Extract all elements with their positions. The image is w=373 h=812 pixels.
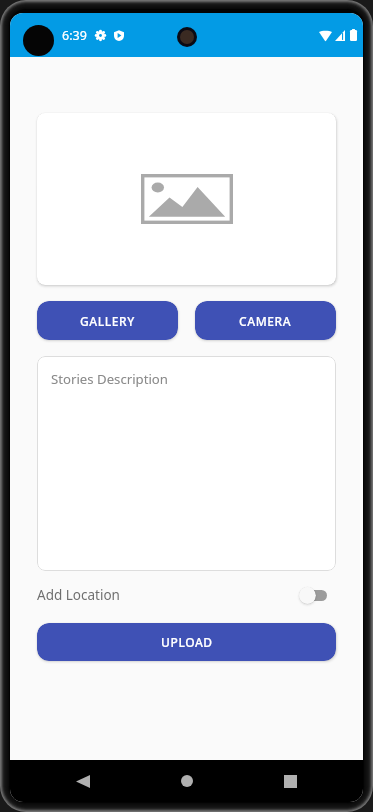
staticText: GALLERY (80, 313, 135, 329)
button[interactable]: UPLOAD (37, 623, 336, 661)
button[interactable]: Back (68, 766, 98, 796)
button[interactable]: Selected image preview (37, 113, 336, 285)
button[interactable]: CAMERA (195, 301, 336, 340)
staticText: CAMERA (239, 313, 292, 329)
staticText: 6:39 (62, 27, 87, 44)
button[interactable]: Stories Description (37, 356, 336, 571)
staticText: Add Location (37, 586, 120, 604)
staticText: UPLOAD (161, 634, 213, 650)
staticText: Stories Description (51, 370, 168, 388)
button[interactable]: Home (172, 766, 202, 796)
button[interactable]: Add location toggle (299, 585, 327, 605)
button[interactable]: Recents (275, 766, 305, 796)
button[interactable]: GALLERY (37, 301, 178, 340)
